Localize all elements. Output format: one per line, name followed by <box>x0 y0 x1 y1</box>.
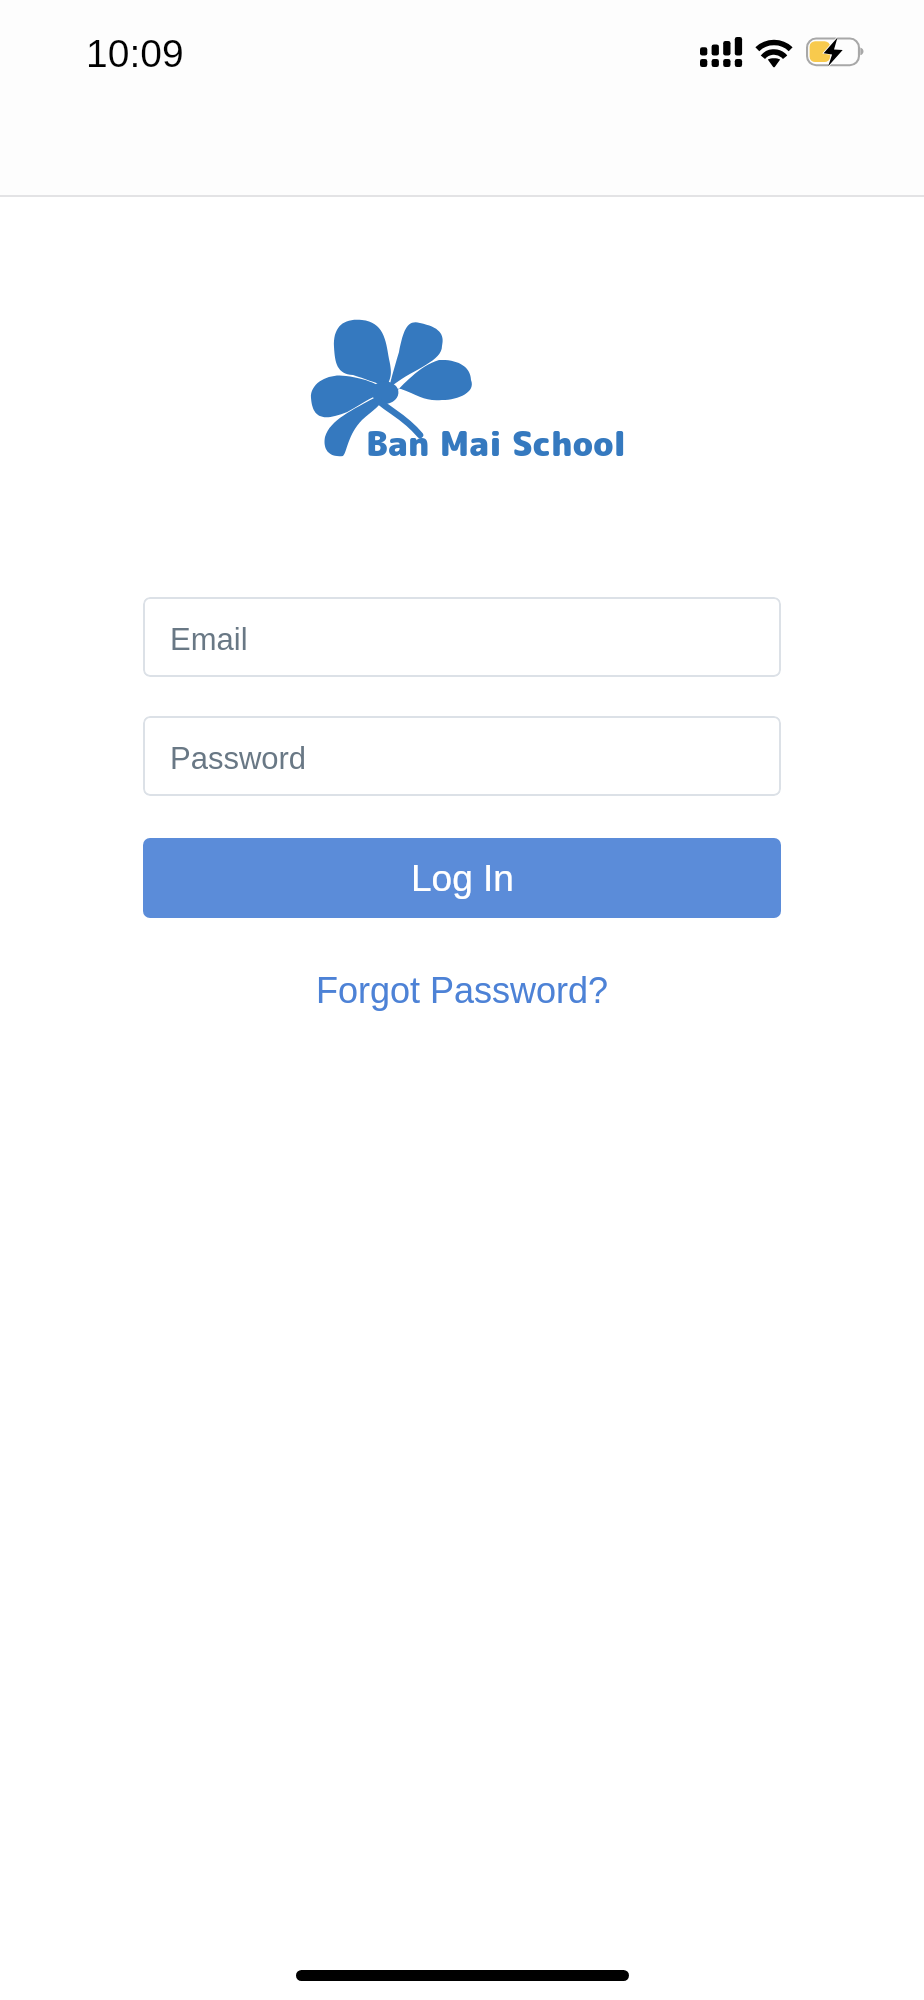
other: Cellular signal <box>700 37 742 67</box>
button[interactable]: Email <box>143 597 781 677</box>
button[interactable]: Forgot Password? <box>302 962 623 1018</box>
other: Wi-Fi <box>756 38 792 66</box>
staticText: Password <box>170 741 307 776</box>
staticText: 10:09 <box>86 32 184 76</box>
staticText: Ban Mai School <box>366 419 627 466</box>
button[interactable]: Log In <box>143 838 781 918</box>
button[interactable]: Password <box>143 716 781 796</box>
other: Battery charging <box>806 37 865 67</box>
staticText: Email <box>170 622 248 657</box>
staticText: Forgot Password? <box>316 970 609 1010</box>
staticText: Log In <box>411 858 514 899</box>
